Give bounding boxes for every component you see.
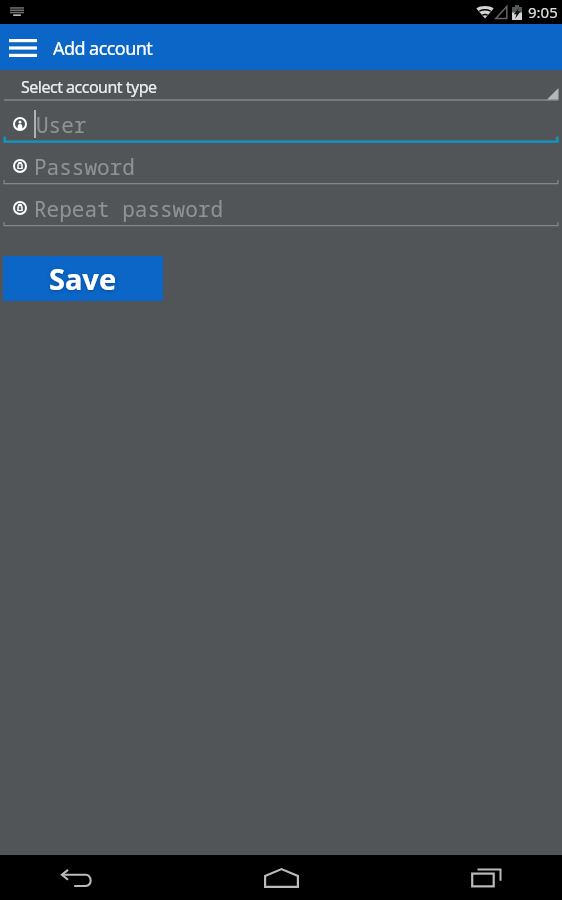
button[interactable]: User (0, 101, 562, 143)
staticText: Password (34, 153, 135, 182)
button[interactable]: Back (16, 855, 136, 900)
button[interactable]: Password (0, 143, 562, 185)
button[interactable]: Select account type (0, 70, 562, 101)
button[interactable]: Home (221, 855, 341, 900)
staticText: Save (49, 259, 117, 298)
staticText: 9:05 (528, 2, 558, 22)
button[interactable]: Open navigation drawer (0, 24, 46, 70)
staticText: User (36, 111, 87, 140)
staticText: Add account (53, 36, 153, 61)
button[interactable]: Repeat password (0, 185, 562, 227)
button[interactable]: Recent apps (427, 855, 547, 900)
staticText: Repeat password (34, 195, 223, 224)
staticText: Select account type (21, 76, 157, 98)
button[interactable]: Save (3, 256, 163, 301)
